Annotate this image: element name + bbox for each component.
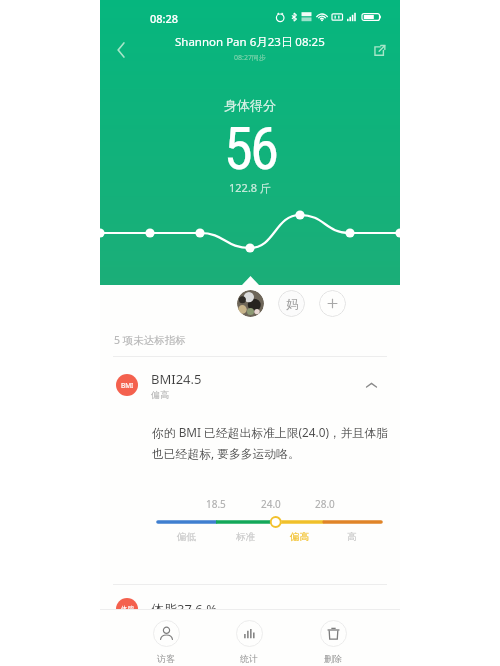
- staticText: 08:28: [150, 11, 179, 26]
- button[interactable]: 妈: [278, 290, 305, 317]
- staticText: 删除: [324, 653, 342, 664]
- staticText: 统计: [240, 653, 258, 664]
- staticText: 28.0: [315, 497, 335, 511]
- staticText: 身体得分: [100, 97, 400, 113]
- staticText: 体脂: [121, 605, 134, 613]
- button[interactable]: 体脂: [116, 594, 384, 624]
- staticText: 24.0: [261, 497, 281, 511]
- button[interactable]: 统计: [223, 620, 275, 664]
- staticText: Shannon Pan 6月23日 08:25: [175, 34, 325, 50]
- staticText: 你的 BMI 已经超出标准上限(24.0)，并且体脂 也已经超标, 要多多运动咯…: [152, 424, 388, 462]
- staticText: 访客: [157, 653, 175, 664]
- staticText: 体脂37.6 %: [151, 600, 217, 618]
- staticText: 18.5: [206, 497, 226, 511]
- staticText: 妈: [286, 296, 298, 311]
- staticText: 标准: [236, 531, 255, 543]
- button[interactable]: Profile photo: [237, 290, 264, 317]
- button[interactable]: 删除: [307, 620, 359, 664]
- button[interactable]: Back: [107, 35, 137, 65]
- staticText: 偏高: [151, 389, 169, 400]
- staticText: BMI: [121, 381, 134, 390]
- button[interactable]: 访客: [140, 620, 192, 664]
- staticText: 08:27同步: [234, 53, 266, 63]
- staticText: 56: [100, 114, 400, 183]
- button[interactable]: BMI: [116, 366, 378, 404]
- staticText: BMI24.5: [151, 370, 202, 388]
- staticText: 高: [347, 531, 357, 543]
- staticText: 122.8 斤: [100, 180, 400, 195]
- button[interactable]: Share: [364, 35, 394, 65]
- staticText: 偏高: [290, 531, 309, 543]
- button[interactable]: Add member: [319, 290, 346, 317]
- staticText: 偏低: [177, 531, 196, 543]
- staticText: 5 项未达标指标: [114, 333, 186, 347]
